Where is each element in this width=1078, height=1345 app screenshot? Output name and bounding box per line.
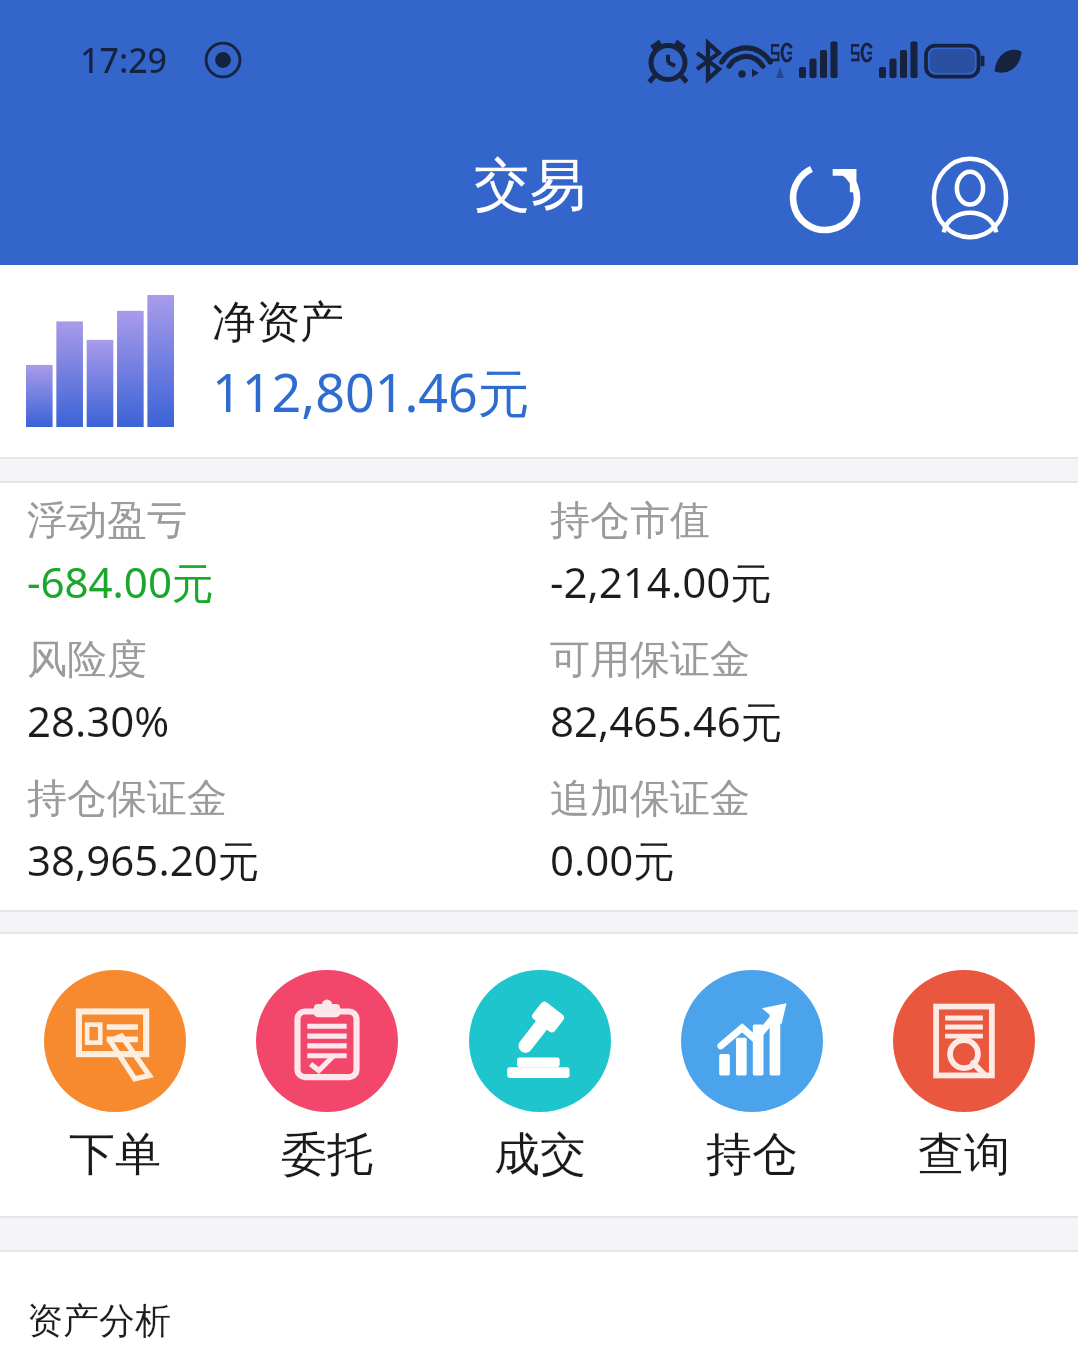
staticText: 持仓 [706,1126,798,1184]
staticText: 交易 [474,150,586,221]
staticText: 38,965.20元 [27,831,260,888]
button[interactable]: Account [915,143,1025,253]
staticText: 82,465.46元 [550,692,783,749]
staticText: 28.30% [27,692,170,749]
button[interactable]: 持仓 [654,970,849,1184]
staticText: 成交 [494,1126,586,1184]
button[interactable]: 追加保证金 [550,773,1078,888]
button[interactable]: 浮动盈亏 [27,495,539,610]
button[interactable]: Refresh [770,143,880,253]
staticText: 风险度 [27,634,147,684]
staticText: 查询 [918,1126,1010,1184]
staticText: -2,214.00元 [550,553,773,610]
button[interactable]: 净资产 [0,265,1078,457]
button[interactable]: 委托 [229,970,424,1184]
button[interactable]: 可用保证金 [550,634,1078,749]
staticText: 净资产 [212,295,344,350]
button[interactable]: 持仓保证金 [27,773,539,888]
staticText: 112,801.46元 [212,356,530,427]
staticText: 下单 [69,1126,161,1184]
button[interactable]: 查询 [866,970,1061,1184]
button[interactable]: 成交 [442,970,637,1184]
staticText: 持仓市值 [550,495,710,545]
staticText: 0.00元 [550,831,676,888]
staticText: 委托 [281,1126,373,1184]
staticText: 17:29 [80,37,168,83]
staticText: -684.00元 [27,553,214,610]
button[interactable]: 风险度 [27,634,539,749]
button[interactable]: 下单 [17,970,212,1184]
staticText: 持仓保证金 [27,773,227,823]
staticText: 资产分析 [27,1298,171,1343]
staticText: 浮动盈亏 [27,495,187,545]
staticText: 可用保证金 [550,634,750,684]
staticText: 追加保证金 [550,773,750,823]
button[interactable]: 持仓市值 [550,495,1078,610]
